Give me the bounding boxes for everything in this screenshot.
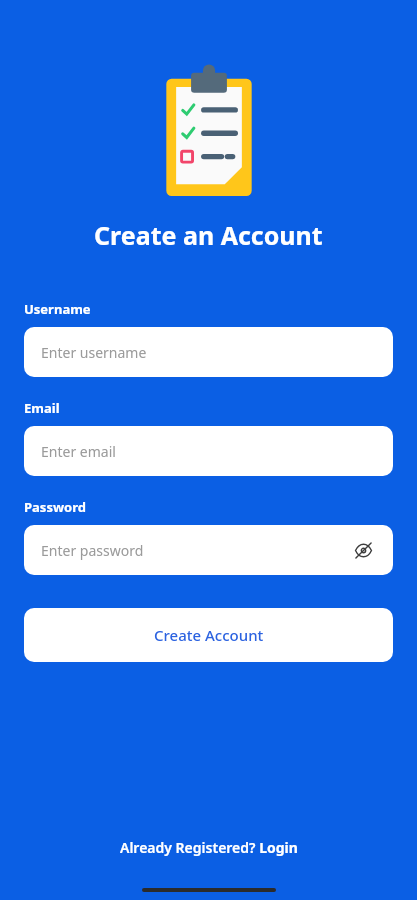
button[interactable]: Enter password bbox=[24, 525, 393, 575]
button[interactable]: Enter username bbox=[24, 327, 393, 377]
staticText: Password bbox=[24, 498, 86, 516]
button[interactable]: Show password bbox=[350, 537, 376, 563]
button[interactable]: Already Registered? Login bbox=[108, 832, 310, 863]
button[interactable]: Enter email bbox=[24, 426, 393, 476]
staticText: Enter password bbox=[41, 541, 350, 560]
staticText: Enter username bbox=[41, 343, 376, 362]
staticText: Username bbox=[24, 300, 91, 318]
staticText: Email bbox=[24, 399, 60, 417]
button[interactable]: Create Account bbox=[24, 608, 393, 662]
staticText: Enter email bbox=[41, 442, 376, 461]
staticText: Create Account bbox=[154, 625, 264, 645]
staticText: Already Registered? Login bbox=[120, 838, 298, 857]
staticText: Create an Account bbox=[94, 218, 323, 252]
